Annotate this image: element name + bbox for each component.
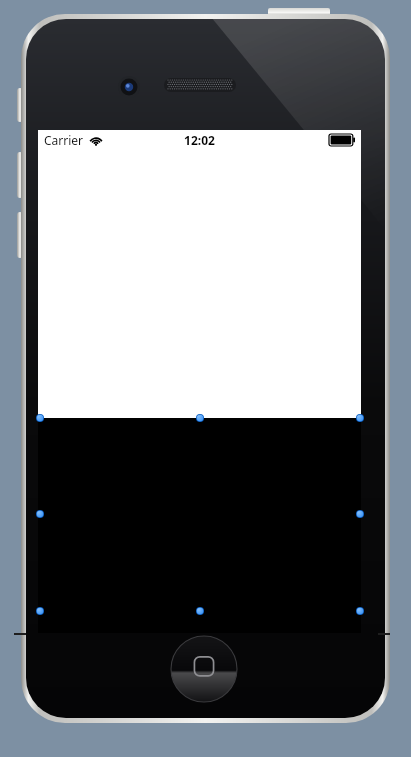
button[interactable]: Home	[171, 636, 237, 702]
staticText: Carrier	[44, 132, 84, 148]
staticText: 12:02	[184, 132, 215, 148]
button[interactable]	[38, 418, 361, 633]
button[interactable]: Volume down	[17, 212, 23, 258]
button[interactable]: Silent switch	[17, 88, 23, 122]
button[interactable]: Volume up	[17, 152, 23, 198]
button[interactable]: Power button	[268, 8, 330, 17]
